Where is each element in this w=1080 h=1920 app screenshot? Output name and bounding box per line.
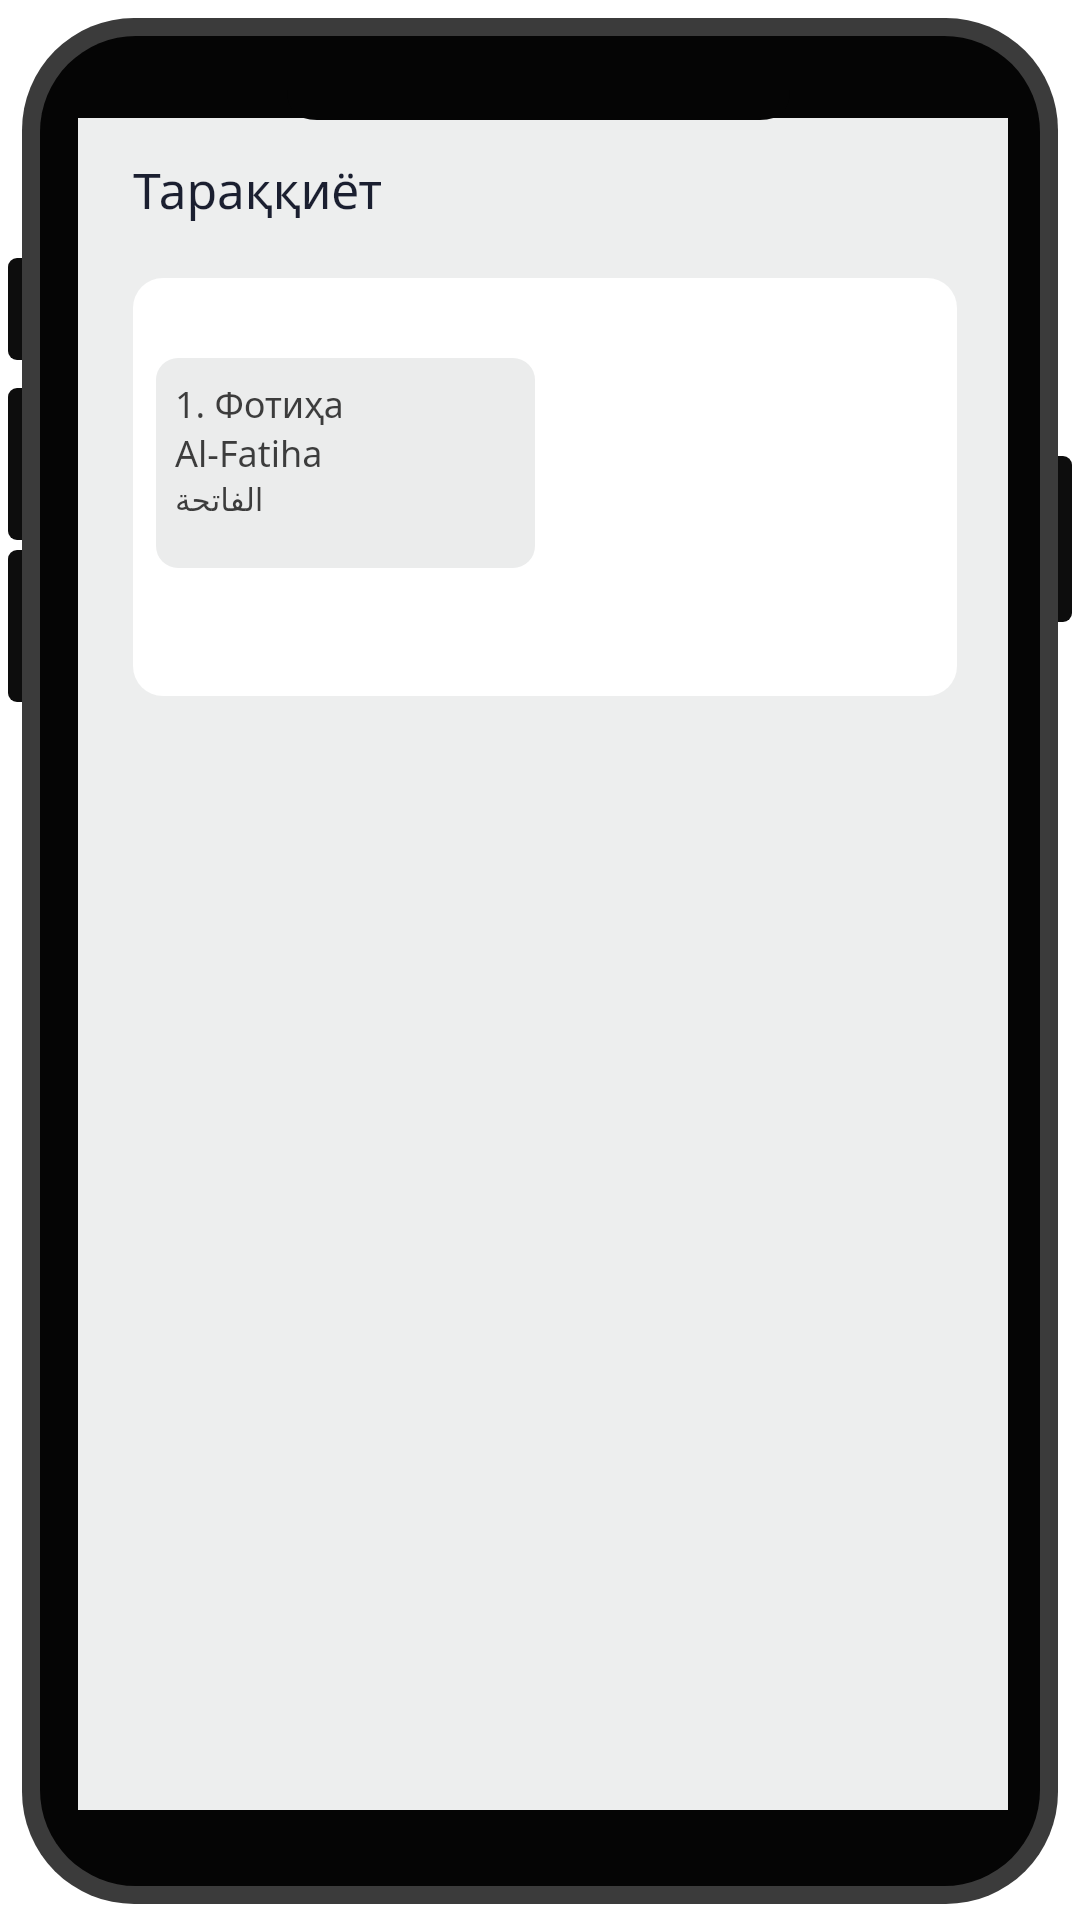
- staticText: Al-Fatiha: [175, 429, 323, 478]
- button[interactable]: 1. Фотиҳа: [133, 278, 957, 696]
- staticText: 1. Фотиҳа: [175, 380, 344, 429]
- staticText: الفاتحة: [175, 482, 264, 518]
- button[interactable]: 1. Фотиҳа: [156, 358, 535, 568]
- staticText: Тараққиёт: [133, 156, 382, 224]
